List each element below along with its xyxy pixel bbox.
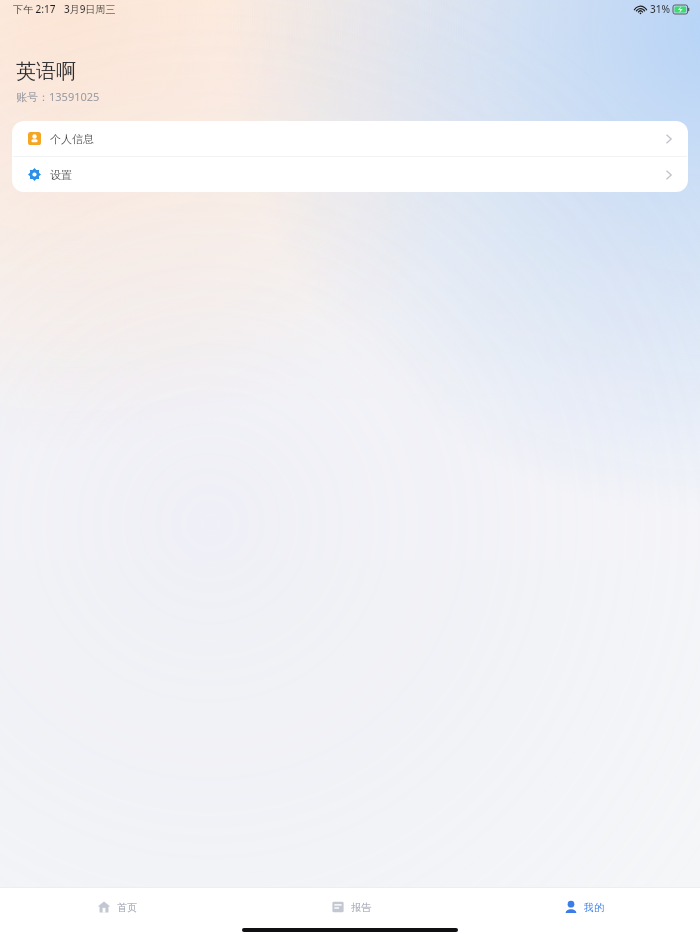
staticText: 账号：13591025	[16, 89, 100, 104]
button[interactable]: 个人信息	[12, 121, 688, 156]
button[interactable]: 设置	[12, 157, 688, 192]
staticText: 首页	[117, 901, 137, 914]
button[interactable]: 我的	[467, 888, 700, 926]
staticText: 31%	[650, 2, 670, 16]
staticText: 报告	[351, 901, 371, 914]
staticText: 个人信息	[50, 132, 94, 146]
button[interactable]: 报告	[234, 888, 467, 926]
staticText: 设置	[50, 168, 72, 182]
staticText: 3月9日周三	[64, 2, 116, 16]
button[interactable]: 首页	[0, 888, 234, 926]
staticText: 英语啊	[16, 59, 76, 84]
staticText: 我的	[584, 901, 604, 914]
staticText: 下午 2:17	[13, 2, 56, 16]
